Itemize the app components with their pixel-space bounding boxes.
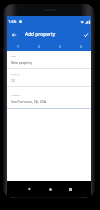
staticText: 3 <box>59 44 61 49</box>
staticText: New property <box>11 60 33 64</box>
button[interactable]: 2 <box>28 42 49 51</box>
staticText: Add property <box>25 31 56 38</box>
button[interactable]: Save <box>81 30 90 39</box>
staticText: Title <box>11 55 16 58</box>
staticText: 4 <box>80 44 82 49</box>
button[interactable]: 1 <box>7 42 28 51</box>
button[interactable]: Back <box>25 185 33 193</box>
button[interactable]: Home <box>46 185 54 193</box>
button[interactable]: Navigate up <box>9 30 18 39</box>
button[interactable]: Address <box>7 87 91 109</box>
staticText: 1 <box>17 44 19 49</box>
staticText: 2 <box>38 44 40 49</box>
staticText: 1:56 <box>8 19 17 25</box>
button[interactable]: Recent apps <box>66 185 74 193</box>
button[interactable]: Price ($) <box>7 69 91 87</box>
button[interactable]: 4 <box>70 42 91 51</box>
staticText: Address <box>11 94 20 97</box>
button[interactable]: Title <box>7 51 91 69</box>
staticText: Price ($) <box>11 73 20 76</box>
staticText: San Francisco, CA, USA <box>11 99 47 103</box>
staticText: 12 <box>11 78 15 82</box>
button[interactable]: 3 <box>49 42 70 51</box>
